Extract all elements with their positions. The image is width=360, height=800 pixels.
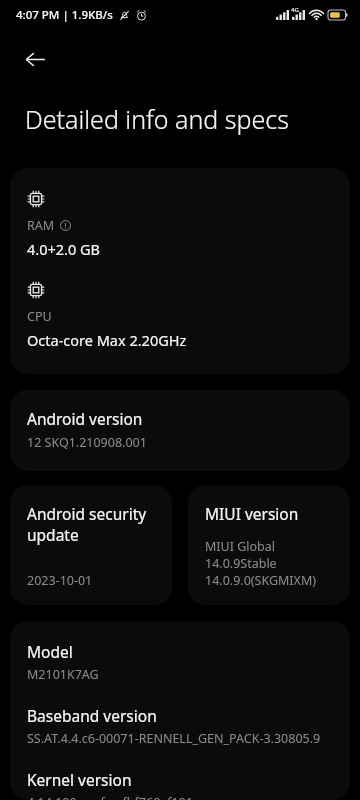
staticText: 12 SKQ1.210908.001 xyxy=(27,434,147,451)
staticText: MIUI Global xyxy=(205,538,276,555)
staticText: SS.AT.4.4.c6-00071-RENNELL_GEN_PACK-3.30… xyxy=(27,730,321,747)
staticText: 4G xyxy=(291,6,299,14)
button[interactable]: MIUI version xyxy=(188,485,350,605)
button[interactable]: Android security xyxy=(10,485,172,605)
staticText: Kernel version xyxy=(27,769,132,790)
button[interactable]: Model xyxy=(10,621,350,800)
button[interactable]: Android version xyxy=(10,390,350,471)
staticText: Android security xyxy=(27,503,147,524)
staticText: update xyxy=(27,524,79,545)
staticText: Model xyxy=(27,641,73,662)
staticText: RAM xyxy=(27,217,55,234)
staticText: 4.0+2.0 GB xyxy=(27,239,100,259)
staticText: Android version xyxy=(27,408,143,429)
staticText: Octa-core Max 2.20GHz xyxy=(27,330,187,350)
staticText: 14.0.9.0(SKGMIXM) xyxy=(205,572,316,589)
staticText: 14.0.9Stable xyxy=(205,555,277,572)
staticText: 4:07 PM | 1.9KB/s xyxy=(16,7,113,23)
staticText: 2023-10-01 xyxy=(27,572,93,589)
staticText: Baseband version xyxy=(27,705,157,726)
staticText: CPU xyxy=(27,308,52,325)
staticText: M2101K7AG xyxy=(27,666,99,683)
button[interactable]: RAM xyxy=(10,168,350,374)
staticText: 4.14.190-perf-gcfbf768af191 xyxy=(27,794,194,800)
staticText: MIUI version xyxy=(205,503,299,524)
staticText: Detailed info and specs xyxy=(25,102,289,136)
button[interactable]: Back xyxy=(14,38,56,80)
